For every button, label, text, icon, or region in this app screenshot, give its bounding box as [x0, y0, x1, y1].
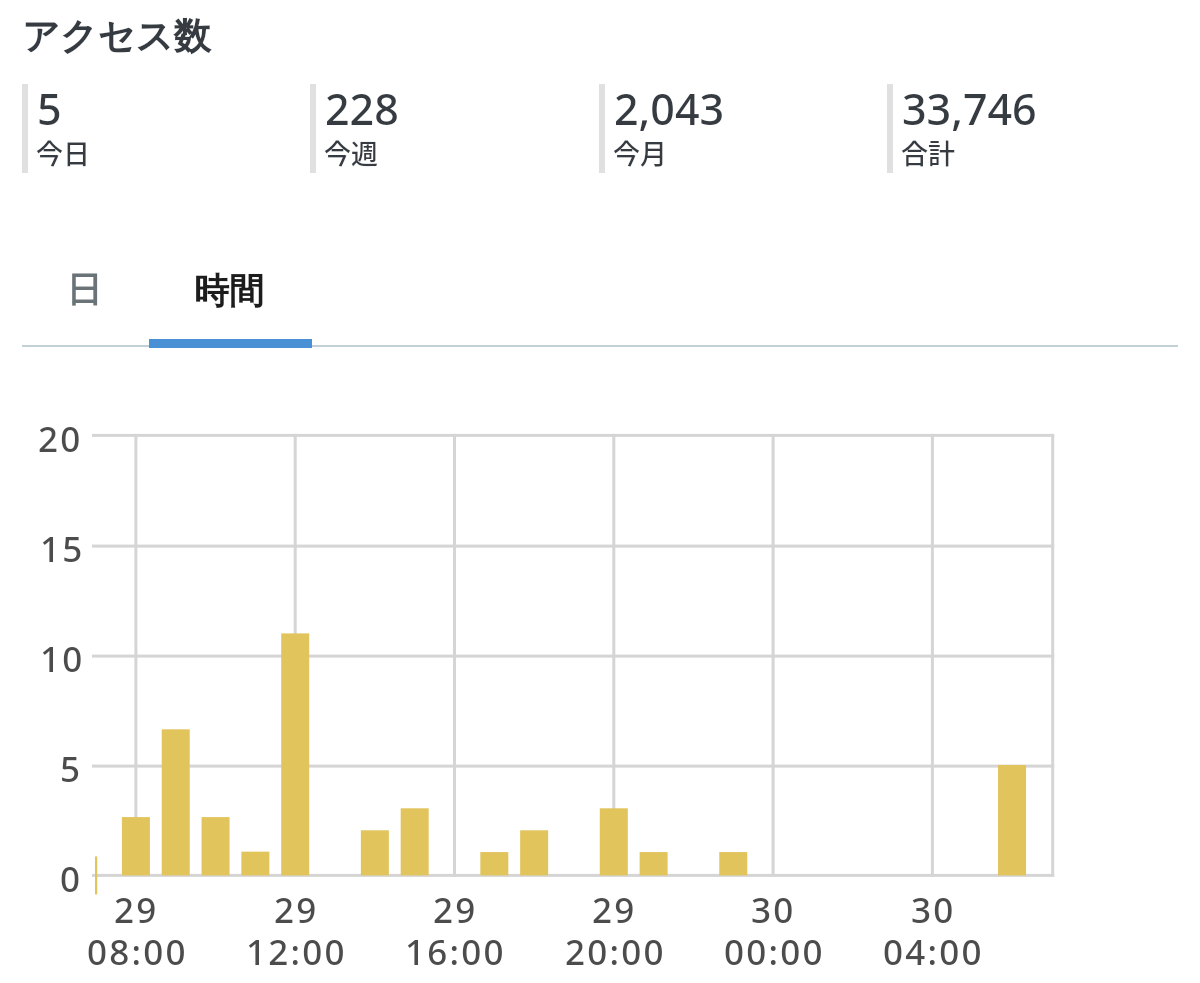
staticText: 時間 [194, 269, 264, 313]
staticText: 5 [37, 79, 62, 138]
staticText: 08:00 [87, 928, 188, 976]
staticText: 今日 [36, 133, 90, 172]
staticText: 5 [60, 745, 83, 793]
staticText: 15 [40, 525, 85, 573]
button[interactable] [149, 256, 312, 346]
staticText: 日 [66, 260, 103, 314]
staticText: 今週 [324, 133, 378, 172]
staticText: 今月 [613, 133, 667, 172]
staticText: 33,746 [902, 79, 1037, 138]
staticText: 12:00 [246, 928, 347, 976]
staticText: 29 [433, 886, 478, 934]
staticText: 0 [60, 855, 83, 903]
staticText: 20 [38, 415, 83, 463]
staticText: 30 [751, 886, 796, 934]
staticText: 20:00 [565, 928, 666, 976]
staticText: 00:00 [724, 928, 825, 976]
staticText: 10 [40, 635, 85, 683]
staticText: 29 [114, 886, 159, 934]
staticText: 2,043 [614, 79, 725, 138]
staticText: アクセス数 [22, 13, 211, 60]
button[interactable] [887, 84, 1175, 173]
staticText: 29 [592, 886, 637, 934]
staticText: 合計 [901, 133, 955, 172]
staticText: 29 [274, 886, 319, 934]
button[interactable] [310, 84, 598, 173]
staticText: 16:00 [405, 928, 506, 976]
staticText: 30 [911, 886, 956, 934]
staticText: 04:00 [883, 928, 984, 976]
button[interactable] [599, 84, 887, 173]
other: Hourly access chart [0, 0, 1200, 983]
button[interactable] [22, 84, 310, 173]
button[interactable] [4, 256, 167, 346]
staticText: 228 [325, 79, 399, 138]
